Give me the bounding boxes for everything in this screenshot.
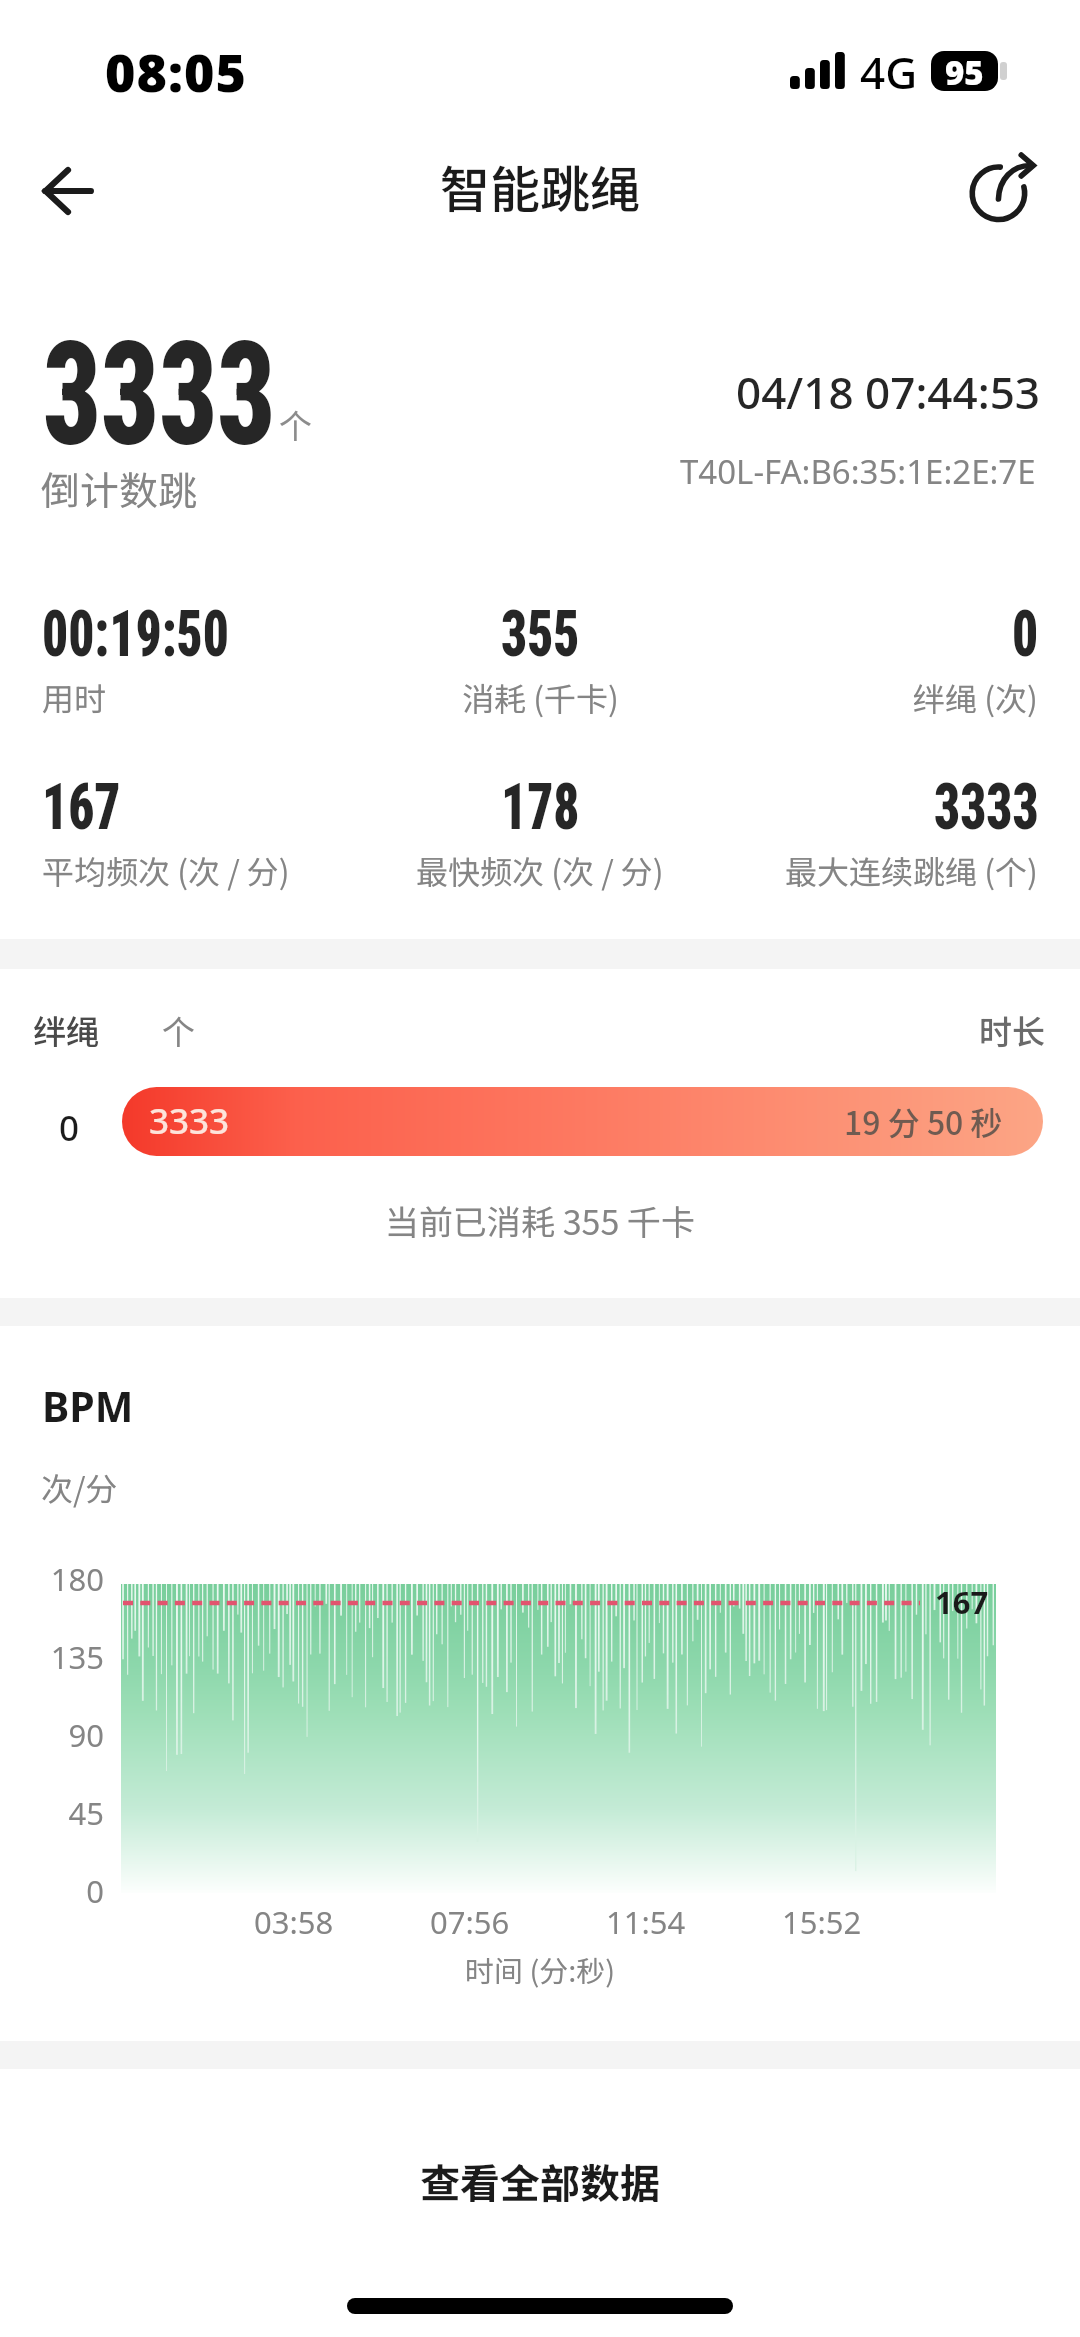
staticText: 最大连续跳绳 (个) xyxy=(785,847,1038,893)
button[interactable]: 3333 xyxy=(122,1087,1043,1156)
staticText: 平均频次 (次 / 分) xyxy=(42,847,290,893)
staticText: 最快频次 (次 / 分) xyxy=(416,847,664,893)
staticText: 15:52 xyxy=(782,1901,862,1943)
staticText: 绊绳 xyxy=(33,1006,99,1054)
button[interactable]: Back xyxy=(21,144,115,238)
staticText: 3333 xyxy=(934,770,1039,845)
staticText: 3333 xyxy=(43,312,276,478)
staticText: 当前已消耗 355 千卡 xyxy=(0,1196,1080,1245)
staticText: 时长 xyxy=(979,1006,1045,1054)
staticText: 11:54 xyxy=(606,1901,686,1943)
staticText: 个 xyxy=(279,400,312,448)
staticText: 用时 xyxy=(42,674,107,720)
staticText: 95 xyxy=(945,51,984,90)
staticText: 0 xyxy=(59,1104,80,1152)
staticText: 90 xyxy=(0,1714,104,1756)
staticText: 查看全部数据 xyxy=(420,2152,660,2210)
staticText: 180 xyxy=(0,1558,104,1600)
staticText: 0 xyxy=(0,1870,104,1912)
button[interactable]: Share xyxy=(956,144,1050,238)
staticText: 355 xyxy=(501,597,580,672)
staticText: 178 xyxy=(501,770,580,845)
staticText: 19 分 50 秒 xyxy=(844,1098,1003,1144)
staticText: BPM xyxy=(42,1378,134,1434)
staticText: 消耗 (千卡) xyxy=(462,674,619,720)
staticText: 00:19:50 xyxy=(42,597,229,672)
staticText: 167 xyxy=(935,1581,989,1623)
staticText: T40L-FA:B6:35:1E:2E:7E xyxy=(680,449,1036,494)
staticText: 08:05 xyxy=(105,36,247,107)
staticText: 绊绳 (次) xyxy=(913,674,1038,720)
staticText: 智能跳绳 xyxy=(0,150,1080,222)
button[interactable]: 查看全部数据 xyxy=(0,2126,1080,2236)
staticText: 0 xyxy=(1012,597,1038,672)
staticText: 167 xyxy=(42,770,121,845)
staticText: 次/分 xyxy=(41,1464,118,1510)
staticText: 135 xyxy=(0,1636,104,1678)
staticText: 07:56 xyxy=(430,1901,510,1943)
staticText: 倒计数跳 xyxy=(41,460,198,516)
staticText: 03:58 xyxy=(254,1901,334,1943)
staticText: 4G xyxy=(860,42,918,102)
staticText: 个 xyxy=(162,1006,195,1054)
staticText: 时间 (分:秒) xyxy=(0,1948,1080,1990)
staticText: 3333 xyxy=(149,1097,230,1145)
staticText: 04/18 07:44:53 xyxy=(736,362,1040,422)
staticText: 45 xyxy=(0,1792,104,1834)
